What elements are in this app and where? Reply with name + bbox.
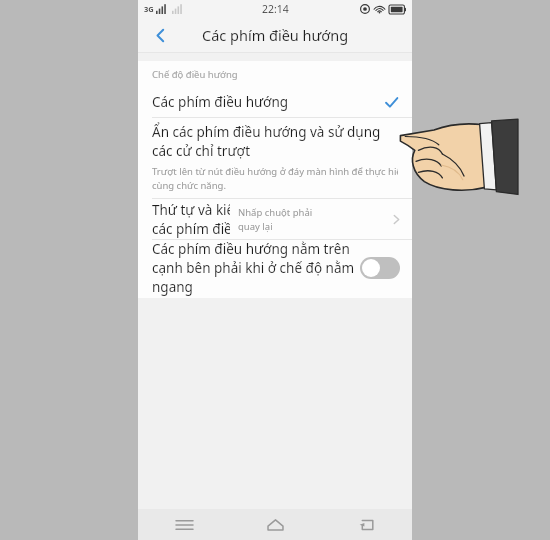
button[interactable]: Thứ tự và kiểu cách của [138,199,412,239]
button[interactable]: Các phím điều hướng [138,87,412,117]
button[interactable]: Ẩn các phím điều hướng và sử dụng [138,118,412,198]
button[interactable]: Home [230,509,321,540]
button[interactable]: Menu [138,509,230,540]
staticText: Nhấp chuột phải [238,206,313,219]
button[interactable]: Back [321,509,412,540]
staticText: ngang [152,278,193,296]
staticText: Các phím điều hướng [152,93,289,111]
staticText: Các phím điều hướng nằm trên [152,240,350,258]
staticText: 3G [144,4,154,14]
staticText: cạnh bên phải khi ở chế độ nằm [152,259,354,277]
staticText: cùng chức năng. [152,179,226,192]
button[interactable]: Back [144,19,176,51]
staticText: Thứ tự và kiểu cách của [152,201,230,219]
staticText: quay lại [238,220,273,233]
staticText: Ẩn các phím điều hướng và sử dụng [152,123,381,141]
staticText: Trượt lên từ nút điều hướng ở đáy màn hì… [152,165,398,178]
button[interactable]: Các phím điều hướng nằm trên [138,240,412,296]
button[interactable]: Toggle landscape navigation keys [360,257,400,279]
staticText: Chế độ điều hướng [152,68,238,81]
staticText: các phím điều hướng [152,220,230,238]
staticText: Các phím điều hướng [202,25,349,45]
staticText: 22:14 [262,2,289,16]
staticText: các cử chỉ trượt [152,142,251,160]
